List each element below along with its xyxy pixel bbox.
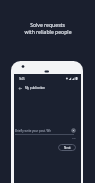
- button[interactable]: Back: [17, 85, 24, 92]
- button[interactable]: Next: [58, 144, 76, 151]
- staticText: 0/5: [72, 136, 76, 139]
- staticText: Next: [64, 146, 71, 150]
- staticText: My publication: [25, 86, 46, 90]
- staticText: Briefly write your post. Wh: [15, 129, 74, 133]
- staticText: Solve requests: [30, 22, 65, 29]
- button[interactable]: Add photo: [72, 129, 75, 132]
- staticText: 9:45: [19, 77, 25, 81]
- staticText: with reliable people: [24, 29, 72, 36]
